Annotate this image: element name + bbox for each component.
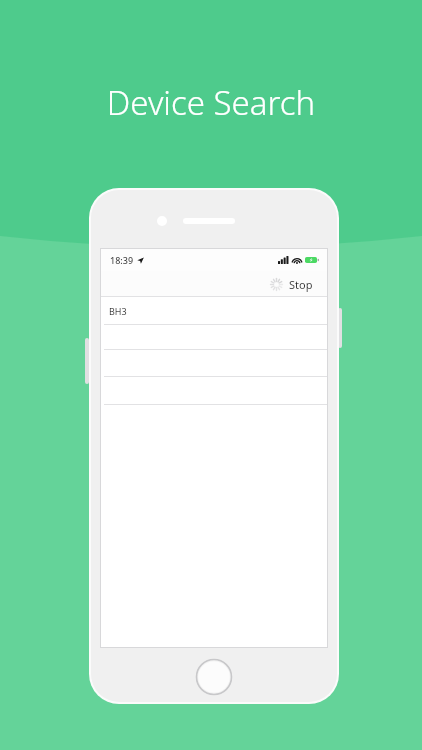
staticText: 18:39 — [110, 254, 134, 266]
button[interactable] — [101, 325, 327, 350]
button[interactable] — [101, 377, 327, 405]
staticText: Stop — [289, 277, 313, 292]
staticText: BH3 — [109, 305, 127, 317]
other: Searching — [270, 278, 283, 291]
staticText: Device Search — [0, 80, 422, 125]
button[interactable]: Searching — [266, 275, 317, 294]
button[interactable]: BH3 — [101, 297, 327, 325]
button[interactable] — [101, 350, 327, 377]
other: Home — [196, 659, 232, 695]
